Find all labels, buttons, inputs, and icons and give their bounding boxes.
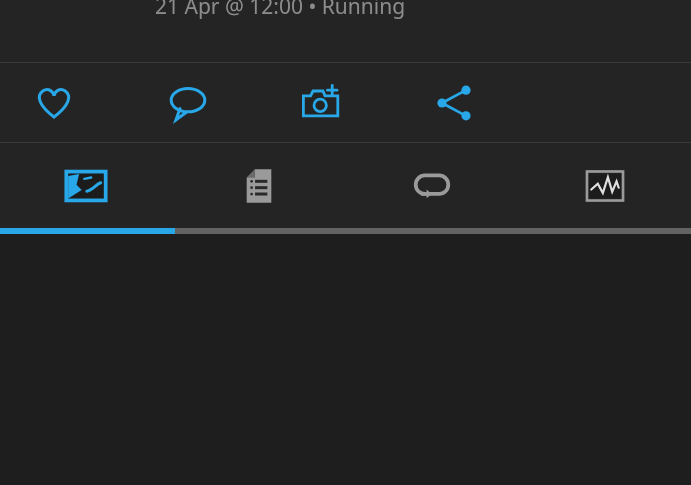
button[interactable]: Like (26, 75, 82, 131)
button[interactable]: Laps (345, 143, 518, 228)
button[interactable]: 21 Apr @ 12:00 • Running (0, 0, 691, 62)
button[interactable]: Splits (172, 143, 345, 228)
staticText: 21 Apr @ 12:00 • Running (155, 0, 406, 21)
button[interactable]: Comment (160, 75, 216, 131)
button[interactable]: Add photo (293, 75, 349, 131)
button[interactable]: Share (426, 75, 482, 131)
button[interactable]: Map (0, 143, 172, 228)
button[interactable]: Charts (518, 143, 691, 228)
